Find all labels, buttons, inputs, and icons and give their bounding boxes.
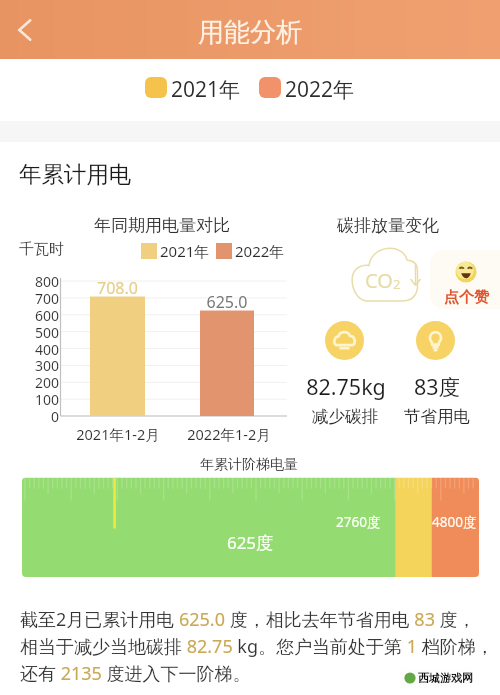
- staticText: 用能分析: [198, 16, 302, 49]
- staticText: 800: [20, 272, 59, 291]
- staticText: 减少碳排: [300, 406, 390, 427]
- staticText: 708.0: [92, 277, 143, 299]
- staticText: 2021年1-2月: [68, 424, 168, 444]
- button[interactable]: Back: [5, 10, 45, 50]
- staticText: 年同期用电量对比: [94, 215, 230, 236]
- staticText: 100: [20, 390, 59, 409]
- staticText: 625.0: [201, 291, 253, 313]
- staticText: 年累计阶梯电量: [0, 456, 499, 474]
- staticText: 2021年: [160, 241, 210, 261]
- staticText: 2760度: [336, 513, 381, 531]
- staticText: 0: [20, 407, 59, 426]
- staticText: 节省用电: [392, 406, 482, 427]
- staticText: 600: [20, 306, 59, 325]
- staticText: 2021年: [171, 75, 241, 104]
- staticText: 西城游戏网: [418, 671, 473, 685]
- staticText: 300: [20, 356, 59, 375]
- staticText: 2022年: [285, 75, 355, 104]
- button[interactable]: 节省用电: [416, 321, 455, 360]
- staticText: 4800度: [432, 513, 477, 531]
- staticText: 700: [20, 289, 59, 308]
- staticText: 82.75kg: [301, 372, 391, 401]
- staticText: 千瓦时: [19, 240, 64, 259]
- staticText: 625度: [224, 531, 276, 554]
- staticText: 年累计用电: [19, 160, 132, 188]
- staticText: 500: [20, 323, 59, 342]
- staticText: 2022年1-2月: [179, 424, 279, 444]
- button[interactable]: 减少碳排: [325, 321, 364, 360]
- staticText: 2: [393, 275, 401, 293]
- staticText: 200: [20, 373, 59, 392]
- staticText: 点个赞: [444, 288, 489, 307]
- staticText: 碳排放量变化: [337, 215, 439, 236]
- staticText: 2022年: [235, 241, 285, 261]
- staticText: 截至2月已累计用电 625.0 度，相比去年节省用电 83 度， 相当于减少当地…: [20, 607, 500, 686]
- staticText: 83度: [392, 372, 482, 401]
- button[interactable]: 点个赞: [430, 250, 500, 309]
- staticText: CO: [365, 267, 393, 294]
- staticText: 400: [20, 340, 59, 359]
